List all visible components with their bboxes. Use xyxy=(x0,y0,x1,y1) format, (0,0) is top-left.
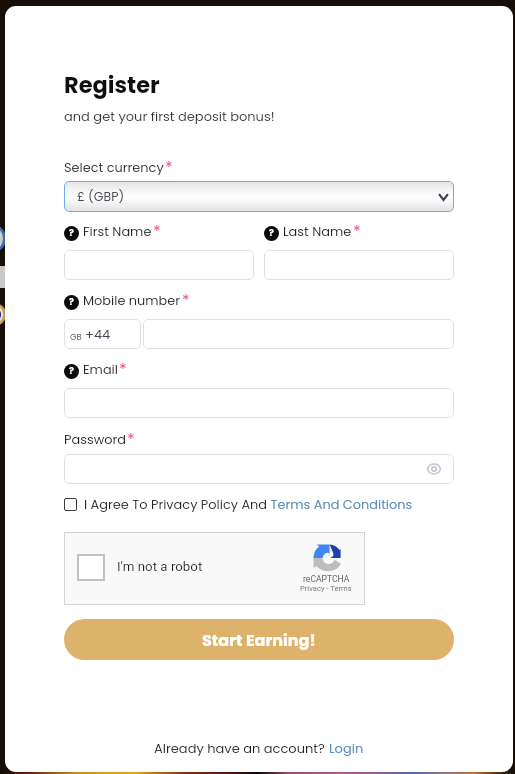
staticText: Select currency xyxy=(64,158,164,176)
button[interactable]: I'm not a robot reCAPTCHA xyxy=(64,532,365,605)
staticText: First Name xyxy=(83,222,152,240)
staticText: * xyxy=(127,428,135,450)
button[interactable]: Help about Email xyxy=(64,364,79,379)
button[interactable]: Start Earning! xyxy=(64,619,454,660)
staticText: £ (GBP) xyxy=(77,188,125,205)
button[interactable]: Country code GB +44 xyxy=(64,319,141,349)
staticText: * xyxy=(119,358,127,380)
staticText: ? xyxy=(69,296,74,309)
button[interactable]: Login xyxy=(329,739,364,757)
staticText: Already have an account? xyxy=(154,739,329,757)
staticText: and get your first deposit bonus! xyxy=(64,107,275,125)
button[interactable]: Input field xyxy=(64,250,254,280)
button[interactable]: Help about First Name xyxy=(64,226,79,241)
button[interactable]: Select currency xyxy=(64,181,454,212)
staticText: Mobile number xyxy=(83,291,181,309)
staticText: * xyxy=(353,220,361,242)
staticText: * xyxy=(165,156,173,178)
staticText: ? xyxy=(269,227,274,240)
staticText: +44 xyxy=(85,325,111,343)
button[interactable]: Show password xyxy=(427,462,441,476)
staticText: ? xyxy=(69,227,74,240)
staticText: I Agree To Privacy Policy And Terms And … xyxy=(84,495,413,513)
button[interactable]: Input field xyxy=(64,388,454,418)
staticText: * xyxy=(153,220,161,242)
staticText: I'm not a robot xyxy=(117,559,203,575)
button[interactable]: Input field xyxy=(264,250,454,280)
staticText: Password xyxy=(64,430,126,448)
staticText: Email xyxy=(83,360,118,378)
staticText: Start Earning! xyxy=(202,629,316,651)
button[interactable]: Input field xyxy=(143,319,454,349)
staticText: Privacy - Terms xyxy=(300,584,352,593)
button[interactable]: I Agree To Privacy Policy And Terms And … xyxy=(64,495,413,513)
staticText: Last Name xyxy=(283,222,352,240)
staticText: reCAPTCHA xyxy=(303,574,350,584)
staticText: * xyxy=(182,289,190,311)
button[interactable]: Input field xyxy=(64,454,454,484)
button[interactable]: Help about Mobile number xyxy=(64,295,79,310)
button[interactable]: Help about Last Name xyxy=(264,226,279,241)
staticText: Register xyxy=(64,69,160,100)
staticText: GB xyxy=(70,331,82,343)
staticText: ? xyxy=(69,365,74,378)
